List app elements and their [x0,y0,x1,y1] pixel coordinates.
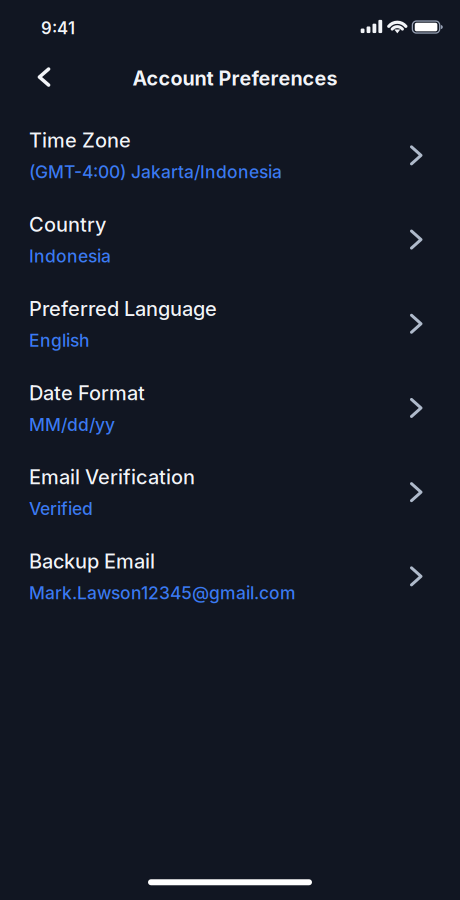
staticText: Backup Email [29,549,155,573]
button[interactable]: Email Verification [0,450,460,534]
staticText: Preferred Language [29,297,217,321]
staticText: Country [29,212,106,237]
staticText: Email Verification [29,465,195,489]
staticText: Indonesia [29,246,111,267]
staticText: Date Format [29,381,145,405]
staticText: Mark.Lawson12345@gmail.com [29,582,296,603]
button[interactable]: Country [0,197,460,282]
staticText: 9:41 [41,18,75,38]
staticText: MM/dd/yy [29,414,115,435]
staticText: Account Preferences [132,66,337,90]
button[interactable]: Date Format [0,366,460,450]
staticText: Time Zone [29,128,131,152]
staticText: Verified [29,498,93,519]
staticText: English [29,330,90,351]
button[interactable]: Time Zone [0,113,460,197]
button[interactable]: Preferred Language [0,282,460,366]
staticText: (GMT-4:00) Jakarta/Indonesia [29,161,282,182]
button[interactable]: Backup Email [0,534,460,618]
button[interactable]: Back [22,56,66,100]
